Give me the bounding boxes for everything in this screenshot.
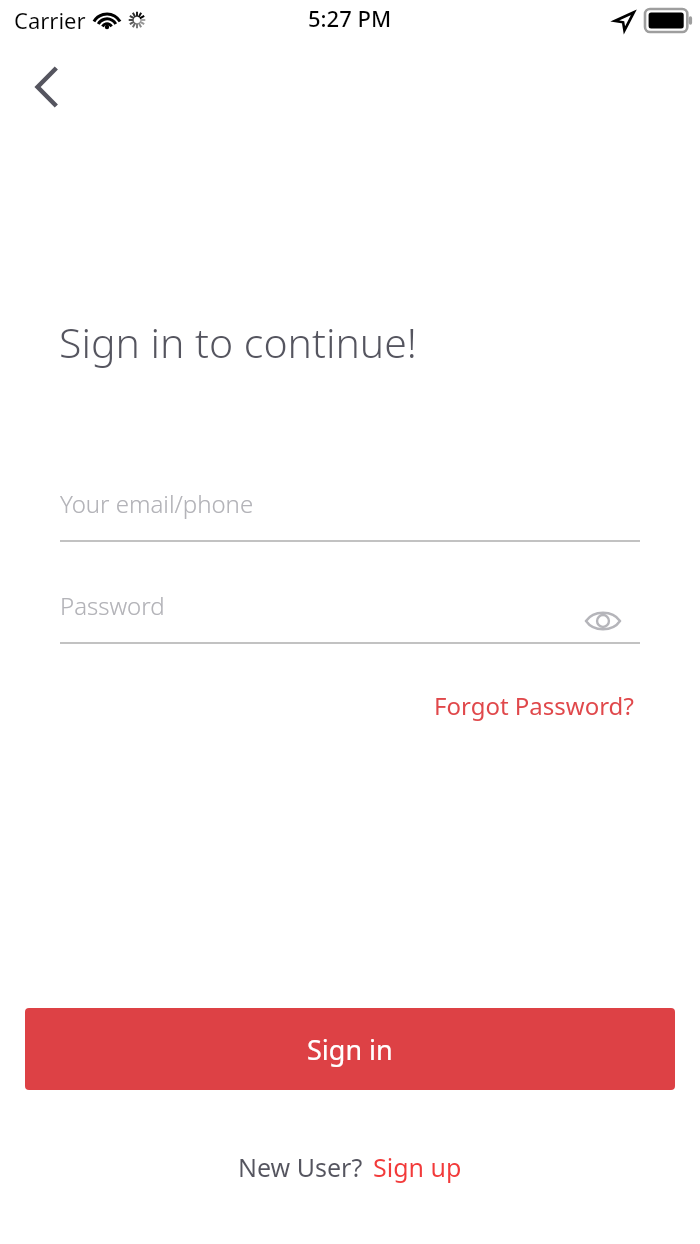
staticText: Sign in [307,1031,393,1068]
staticText: Forgot Password? [434,689,634,722]
button[interactable]: Forgot Password? [428,683,640,728]
button[interactable]: Your email/phone [60,487,640,542]
button[interactable]: Sign in [25,1008,675,1090]
staticText: New User? [238,1150,363,1184]
button[interactable]: Password [60,589,640,644]
staticText: Sign in to continue! [59,314,417,370]
button[interactable]: Back [16,58,80,116]
staticText: Sign up [373,1150,462,1184]
button[interactable]: Sign up [373,1150,462,1184]
staticText: Carrier [14,5,86,35]
staticText: 5:27 PM [308,3,392,33]
button[interactable]: Show password [572,592,634,650]
staticText: Your email/phone [60,487,254,520]
staticText: Password [60,589,165,622]
